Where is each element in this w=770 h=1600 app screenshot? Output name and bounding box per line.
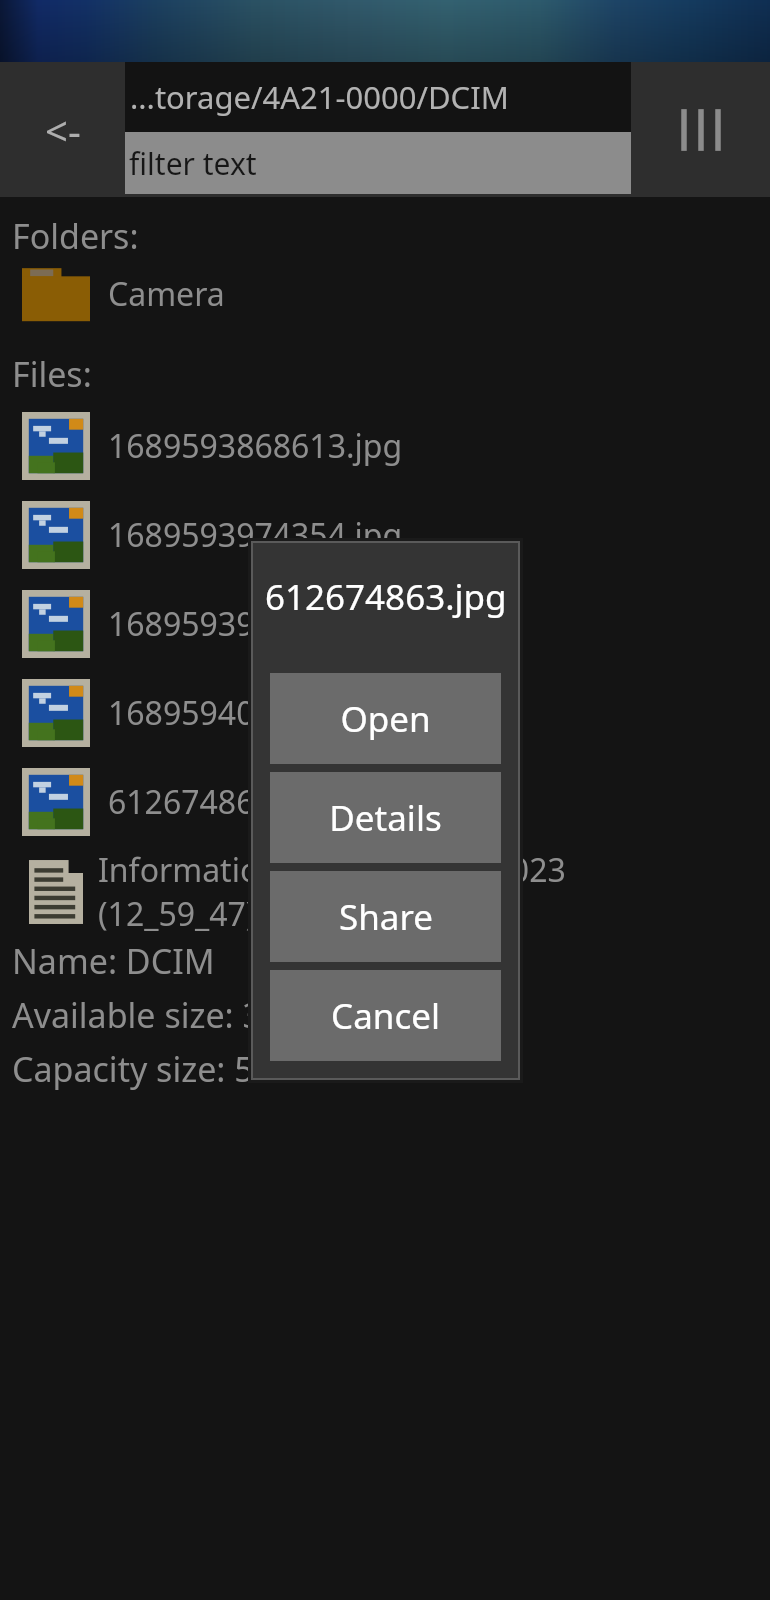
staticText: Details — [329, 794, 442, 842]
button[interactable]: Open — [270, 673, 501, 764]
button[interactable]: 1689593868613.jpg — [0, 401, 770, 490]
staticText: Cancel — [331, 992, 440, 1040]
staticText: 612674863.jpg — [108, 780, 329, 824]
staticText: <- — [45, 103, 81, 157]
button[interactable]: Information_DCIM_21_07_2023 — [0, 846, 770, 938]
staticText: Folders: — [12, 213, 139, 259]
staticText: 1689593974354.jpg — [108, 513, 403, 557]
staticText: ...torage/4A21-0000/DCIM — [130, 76, 509, 118]
button[interactable]: filter text — [125, 132, 631, 194]
button[interactable]: Cancel — [270, 970, 501, 1061]
button[interactable]: 612674863.jpg — [0, 757, 770, 846]
button[interactable]: 1689593998172.jpg — [0, 579, 770, 668]
button[interactable]: Menu — [631, 62, 770, 197]
button[interactable]: 1689593974354.jpg — [0, 490, 770, 579]
staticText: Open — [340, 695, 431, 743]
staticText: Information_DCIM_21_07_2023 — [98, 848, 566, 892]
button[interactable]: Back — [0, 62, 125, 197]
staticText: Name: DCIM — [12, 938, 215, 984]
button[interactable]: ...torage/4A21-0000/DCIM — [125, 62, 631, 132]
staticText: Capacity size: 59.5 GB — [12, 1046, 358, 1092]
staticText: Camera — [108, 272, 225, 316]
staticText: 612674863.jpg — [265, 573, 507, 621]
button[interactable]: 1689594012933.jpg — [0, 668, 770, 757]
button[interactable]: Share — [270, 871, 501, 962]
staticText: 1689594012933.jpg — [108, 691, 403, 735]
staticText: (12_59_47).txt — [98, 892, 305, 936]
staticText: 1689593868613.jpg — [108, 424, 403, 468]
staticText: Files: — [12, 351, 92, 397]
button[interactable]: Camera — [0, 259, 770, 329]
staticText: Available size: 30.1 GB — [12, 992, 366, 1038]
button[interactable]: Details — [270, 772, 501, 863]
staticText: Share — [339, 893, 433, 941]
staticText: 1689593998172.jpg — [108, 602, 403, 646]
staticText: filter text — [129, 143, 257, 184]
